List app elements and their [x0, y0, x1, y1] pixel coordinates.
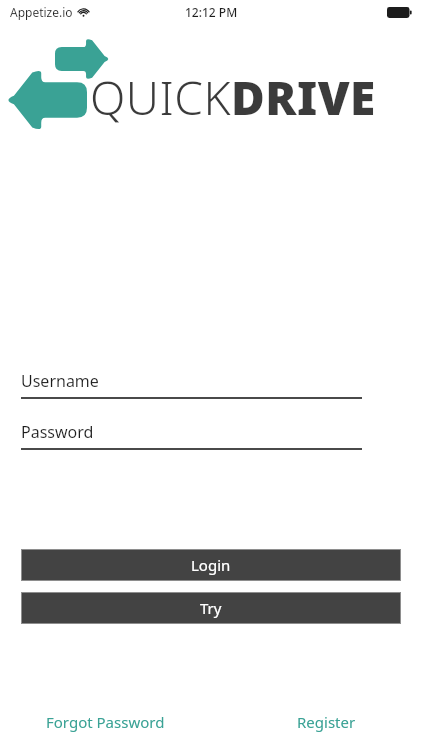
- button[interactable]: Register: [291, 706, 362, 738]
- staticText: Try: [200, 598, 222, 618]
- button[interactable]: Username: [21, 370, 362, 399]
- button[interactable]: Password: [21, 421, 362, 450]
- staticText: Register: [297, 712, 356, 732]
- button[interactable]: Forgot Password: [40, 706, 171, 738]
- staticText: 12:12 PM: [185, 4, 238, 20]
- staticText: Login: [191, 555, 231, 575]
- staticText: Appetize.io: [10, 4, 73, 20]
- staticText: Forgot Password: [46, 712, 165, 732]
- staticText: Password: [21, 421, 94, 443]
- staticText: Username: [21, 370, 99, 392]
- button[interactable]: Try: [21, 592, 401, 624]
- staticText: QUICK: [90, 66, 231, 129]
- staticText: DRIVE: [231, 66, 376, 129]
- button[interactable]: Login: [21, 549, 401, 581]
